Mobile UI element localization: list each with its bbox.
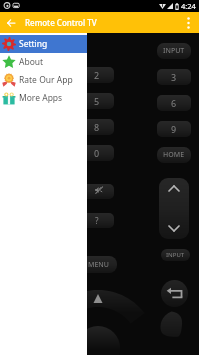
- staticText: HOME: [163, 150, 185, 160]
- button[interactable]: Channel up and down: [159, 178, 189, 239]
- button[interactable]: POWER: [42, 41, 76, 57]
- button[interactable]: About: [0, 53, 87, 71]
- staticText: 8: [94, 121, 100, 133]
- button[interactable]: Setting: [0, 35, 87, 53]
- staticText: 4: [18, 95, 24, 107]
- staticText: About: [19, 56, 44, 68]
- button[interactable]: INPUT: [161, 249, 190, 261]
- staticText: POWER: [47, 44, 72, 54]
- staticText: INPUT: [166, 251, 185, 259]
- staticText: ?: [95, 215, 99, 226]
- staticText: 4: [56, 95, 62, 107]
- staticText: INPUT: [163, 46, 185, 56]
- staticText: Remote Control TV: [25, 17, 97, 28]
- button[interactable]: More options: [178, 12, 199, 33]
- staticText: 9: [171, 123, 177, 135]
- staticText: 1: [56, 69, 62, 81]
- staticText: 5: [94, 95, 100, 107]
- staticText: More Apps: [19, 92, 63, 104]
- button[interactable]: 1: [42, 67, 76, 83]
- button[interactable]: 0: [80, 145, 114, 161]
- button[interactable]: More Apps: [0, 89, 87, 107]
- button[interactable]: 6: [157, 95, 191, 111]
- button[interactable]: 1: [4, 67, 38, 83]
- button[interactable]: 3: [157, 69, 191, 85]
- button[interactable]: INPUT: [157, 43, 191, 59]
- button[interactable]: Navigate up: [0, 12, 21, 33]
- staticText: 6: [171, 97, 177, 109]
- button[interactable]: 5: [80, 93, 114, 109]
- staticText: 1: [18, 69, 24, 81]
- staticText: 0: [94, 147, 100, 159]
- button[interactable]: 9: [157, 121, 191, 137]
- button[interactable]: 4: [42, 93, 76, 109]
- staticText: 3: [171, 71, 177, 83]
- staticText: Rate Our App: [19, 74, 73, 86]
- button[interactable]: 4: [4, 93, 38, 109]
- staticText: MENU: [88, 260, 109, 270]
- button[interactable]: HOME: [157, 147, 191, 163]
- button[interactable]: Back: [161, 280, 188, 307]
- button[interactable]: MENU: [80, 256, 117, 273]
- staticText: Setting: [19, 38, 48, 50]
- button[interactable]: 8: [80, 119, 114, 135]
- button[interactable]: 2: [80, 67, 114, 83]
- button[interactable]: Direction pad: [40, 290, 156, 355]
- button[interactable]: [80, 184, 114, 199]
- button[interactable]: ?: [80, 213, 114, 228]
- staticText: 4:24: [181, 1, 196, 11]
- staticText: 2: [94, 69, 100, 81]
- button[interactable]: Rate Our App: [0, 71, 87, 89]
